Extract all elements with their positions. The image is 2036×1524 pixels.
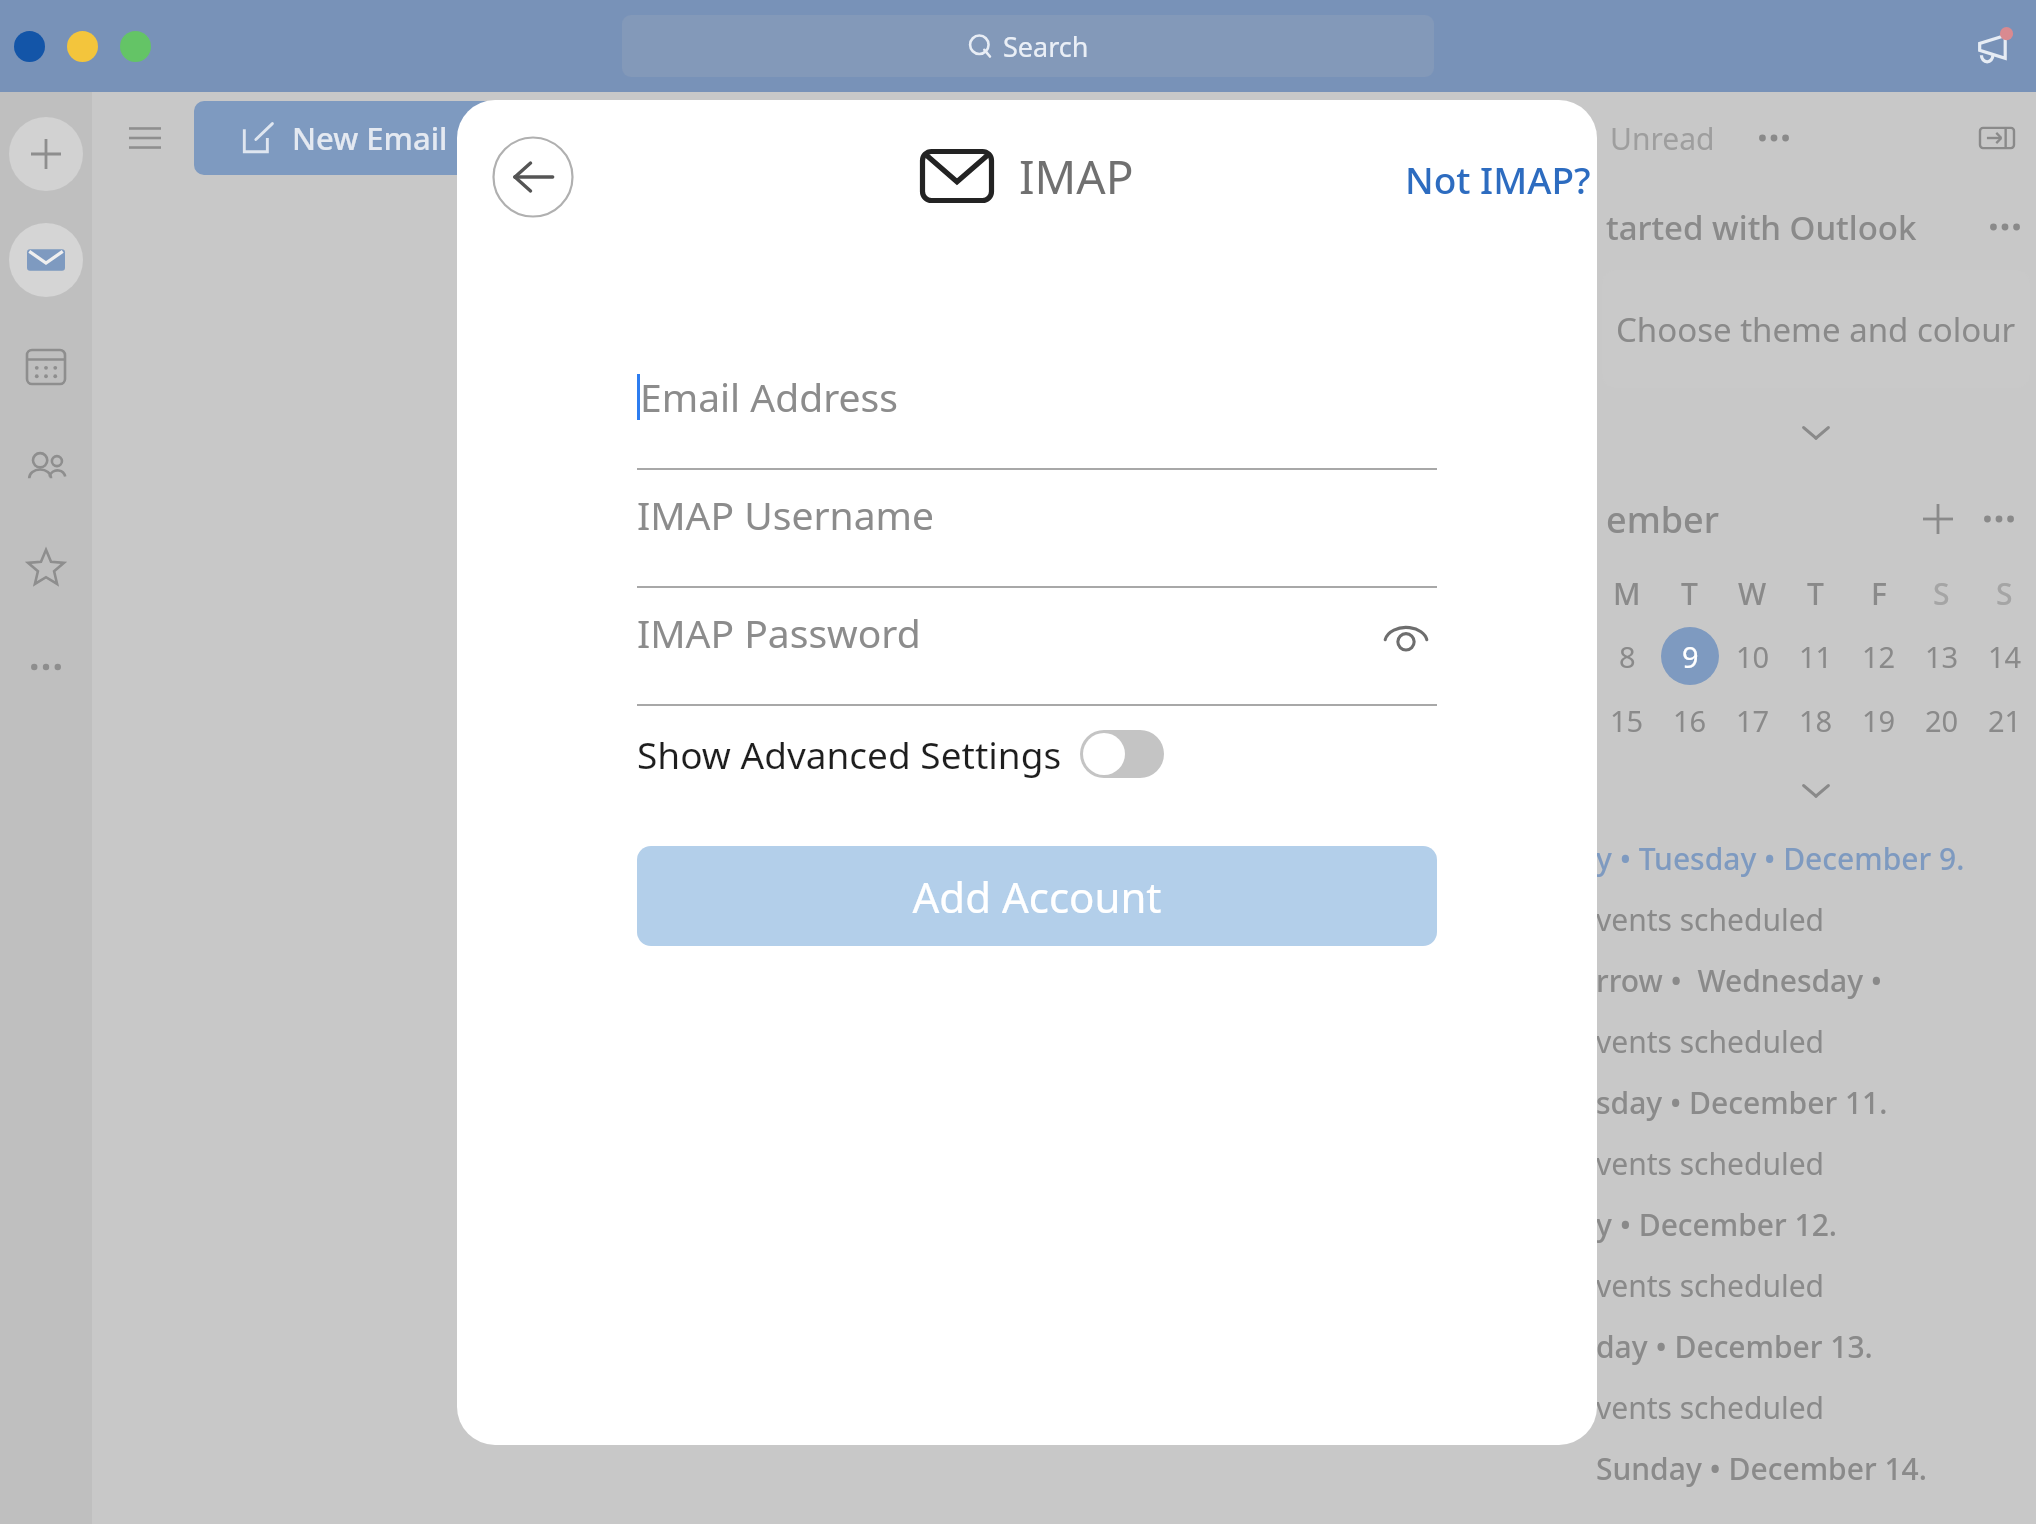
button[interactable]: 17: [1724, 691, 1782, 749]
staticText: M: [1613, 573, 1641, 614]
staticText: 8: [1619, 637, 1636, 676]
staticText: 18: [1799, 701, 1833, 740]
staticText: Add Account: [912, 868, 1162, 925]
staticText: vents scheduled: [1596, 1021, 1825, 1062]
button[interactable]: y • December 12.: [1596, 1194, 2036, 1255]
button[interactable]: Mail: [9, 223, 83, 297]
staticText: 21: [1988, 701, 2022, 740]
button[interactable]: 12: [1850, 627, 1908, 685]
staticText: IMAP: [1019, 145, 1134, 208]
button[interactable]: IMAP Username: [637, 470, 1437, 588]
staticText: Email Address: [640, 370, 898, 423]
staticText: Search: [1003, 28, 1089, 65]
staticText: Unread: [1610, 118, 1715, 159]
staticText: 13: [1925, 637, 1959, 676]
staticText: rrow • Wednesday • December…: [1596, 960, 2036, 1001]
staticText: tarted with Outlook: [1606, 205, 1917, 250]
staticText: IMAP Password: [637, 606, 921, 659]
staticText: vents scheduled: [1596, 1143, 1825, 1184]
button[interactable]: 11: [1787, 627, 1845, 685]
button[interactable]: Favourites: [16, 537, 76, 597]
button[interactable]: 15: [1598, 691, 1656, 749]
staticText: T: [1681, 573, 1698, 614]
staticText: IMAP Username: [637, 488, 934, 541]
staticText: S: [1996, 573, 2013, 614]
button[interactable]: 13: [1913, 627, 1971, 685]
button[interactable]: 19: [1850, 691, 1908, 749]
button[interactable]: New Email: [194, 101, 494, 175]
staticText: sday • December 11.: [1596, 1082, 1888, 1123]
button[interactable]: Menu: [114, 107, 176, 169]
staticText: Sunday • December 14.: [1596, 1448, 1927, 1489]
button[interactable]: 16: [1661, 691, 1719, 749]
staticText: 14: [1988, 637, 2022, 676]
button[interactable]: IMAP Password: [637, 588, 1437, 706]
staticText: New Email: [292, 117, 448, 159]
button[interactable]: vents scheduled: [1596, 1255, 2036, 1316]
button[interactable]: New item: [9, 117, 83, 191]
button[interactable]: Show Advanced Settings: [637, 706, 1437, 802]
staticText: ember: [1606, 495, 1719, 544]
button[interactable]: 8: [1598, 627, 1656, 685]
staticText: day • December 13.: [1596, 1326, 1873, 1367]
button[interactable]: Not IMAP?: [1397, 146, 1597, 212]
staticText: vents scheduled: [1596, 1265, 1825, 1306]
button[interactable]: Announcements: [1966, 20, 2018, 72]
button[interactable]: 14: [1976, 627, 2034, 685]
button[interactable]: Calendar: [16, 337, 76, 397]
button[interactable]: Search: [622, 15, 1434, 77]
staticText: 20: [1925, 701, 1959, 740]
staticText: 19: [1862, 701, 1896, 740]
staticText: y • Tuesday • December 9.: [1596, 838, 1965, 879]
staticText: 9: [1682, 637, 1699, 676]
staticText: vents scheduled: [1596, 899, 1825, 940]
button[interactable]: vents scheduled: [1596, 1011, 2036, 1072]
button[interactable]: More: [16, 637, 76, 697]
button[interactable]: Back: [492, 136, 574, 218]
button[interactable]: 20: [1913, 691, 1971, 749]
staticText: Show Advanced Settings: [637, 729, 1062, 779]
button[interactable]: 18: [1787, 691, 1845, 749]
staticText: vents scheduled: [1596, 1387, 1825, 1428]
button[interactable]: Show password: [1375, 606, 1437, 668]
button[interactable]: Choose theme and colour: [1602, 270, 2030, 388]
staticText: 17: [1736, 701, 1770, 740]
button[interactable]: 21: [1976, 691, 2034, 749]
staticText: Not IMAP?: [1405, 154, 1591, 204]
button[interactable]: People: [16, 437, 76, 497]
button[interactable]: 9: [1661, 627, 1719, 685]
staticText: 15: [1610, 701, 1644, 740]
button[interactable]: More options: [1749, 113, 1799, 163]
button[interactable]: 10: [1724, 627, 1782, 685]
staticText: F: [1871, 573, 1887, 614]
button[interactable]: vents scheduled: [1596, 1133, 2036, 1194]
staticText: S: [1933, 573, 1950, 614]
button[interactable]: vents scheduled: [1596, 889, 2036, 950]
button[interactable]: Add Account: [637, 846, 1437, 946]
button[interactable]: Minimise: [67, 31, 98, 62]
button[interactable]: sday • December 11.: [1596, 1072, 2036, 1133]
staticText: y • December 12.: [1596, 1204, 1838, 1245]
button[interactable]: Maximise: [120, 31, 151, 62]
button[interactable]: Sunday • December 14.: [1596, 1438, 2036, 1499]
staticText: 12: [1862, 637, 1896, 676]
staticText: T: [1807, 573, 1824, 614]
staticText: 10: [1736, 637, 1770, 676]
staticText: 11: [1799, 637, 1833, 676]
staticText: 16: [1673, 701, 1707, 740]
button[interactable]: Expand pane: [1972, 113, 2022, 163]
button[interactable]: Close: [14, 31, 45, 62]
button[interactable]: vents scheduled: [1596, 1377, 2036, 1438]
button[interactable]: y • Tuesday • December 9.: [1596, 828, 2036, 889]
button[interactable]: Email Address: [637, 352, 1437, 470]
staticText: Choose theme and colour: [1616, 307, 2016, 352]
button[interactable]: rrow • Wednesday • December…: [1596, 950, 2036, 1011]
button[interactable]: day • December 13.: [1596, 1316, 2036, 1377]
staticText: W: [1738, 573, 1767, 614]
